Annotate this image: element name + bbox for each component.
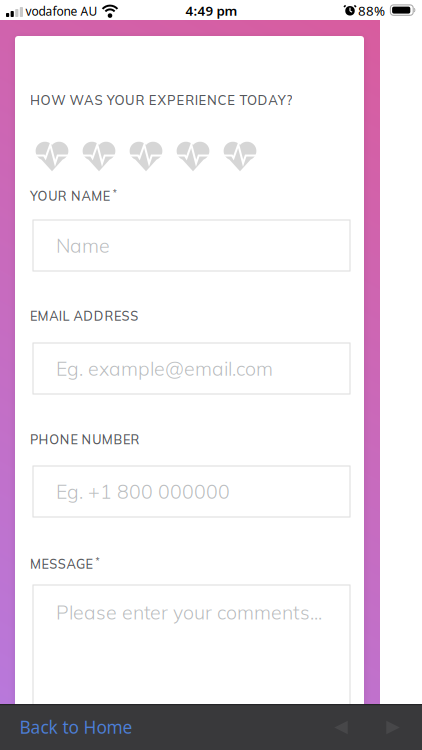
button[interactable]: Message bbox=[33, 585, 350, 717]
staticText: EMAIL ADDRESS bbox=[30, 308, 138, 324]
staticText: * bbox=[96, 555, 100, 566]
button[interactable]: Your name bbox=[33, 220, 350, 271]
staticText: PHONE NUMBER bbox=[30, 431, 140, 447]
button[interactable]: Back to Home bbox=[19, 704, 219, 750]
staticText: YOUR NAME bbox=[30, 188, 110, 204]
button[interactable]: Forward bbox=[386, 721, 400, 734]
button[interactable]: Phone number bbox=[33, 466, 350, 517]
staticText: Eg. +1 800 000000 bbox=[56, 479, 230, 504]
button[interactable]: Email address bbox=[33, 343, 350, 394]
button[interactable]: Rate bbox=[223, 141, 256, 171]
staticText: MESSAGE bbox=[30, 556, 93, 572]
button[interactable]: Rate bbox=[129, 141, 162, 171]
staticText: 88% bbox=[358, 2, 385, 19]
staticText: Please enter your comments... bbox=[56, 600, 322, 624]
button[interactable]: Rate bbox=[176, 141, 209, 171]
staticText: Eg. example@email.com bbox=[56, 356, 273, 381]
button[interactable]: Rate bbox=[35, 141, 68, 171]
staticText: vodafone AU bbox=[25, 3, 97, 19]
staticText: 4:49 pm bbox=[185, 2, 237, 19]
staticText: HOW WAS YOUR EXPERIENCE TODAY? bbox=[30, 92, 292, 108]
staticText: Name bbox=[56, 233, 110, 258]
button[interactable]: Back bbox=[334, 721, 348, 734]
staticText: * bbox=[113, 187, 117, 198]
button[interactable]: Rate bbox=[82, 141, 115, 171]
staticText: Back to Home bbox=[19, 715, 132, 738]
